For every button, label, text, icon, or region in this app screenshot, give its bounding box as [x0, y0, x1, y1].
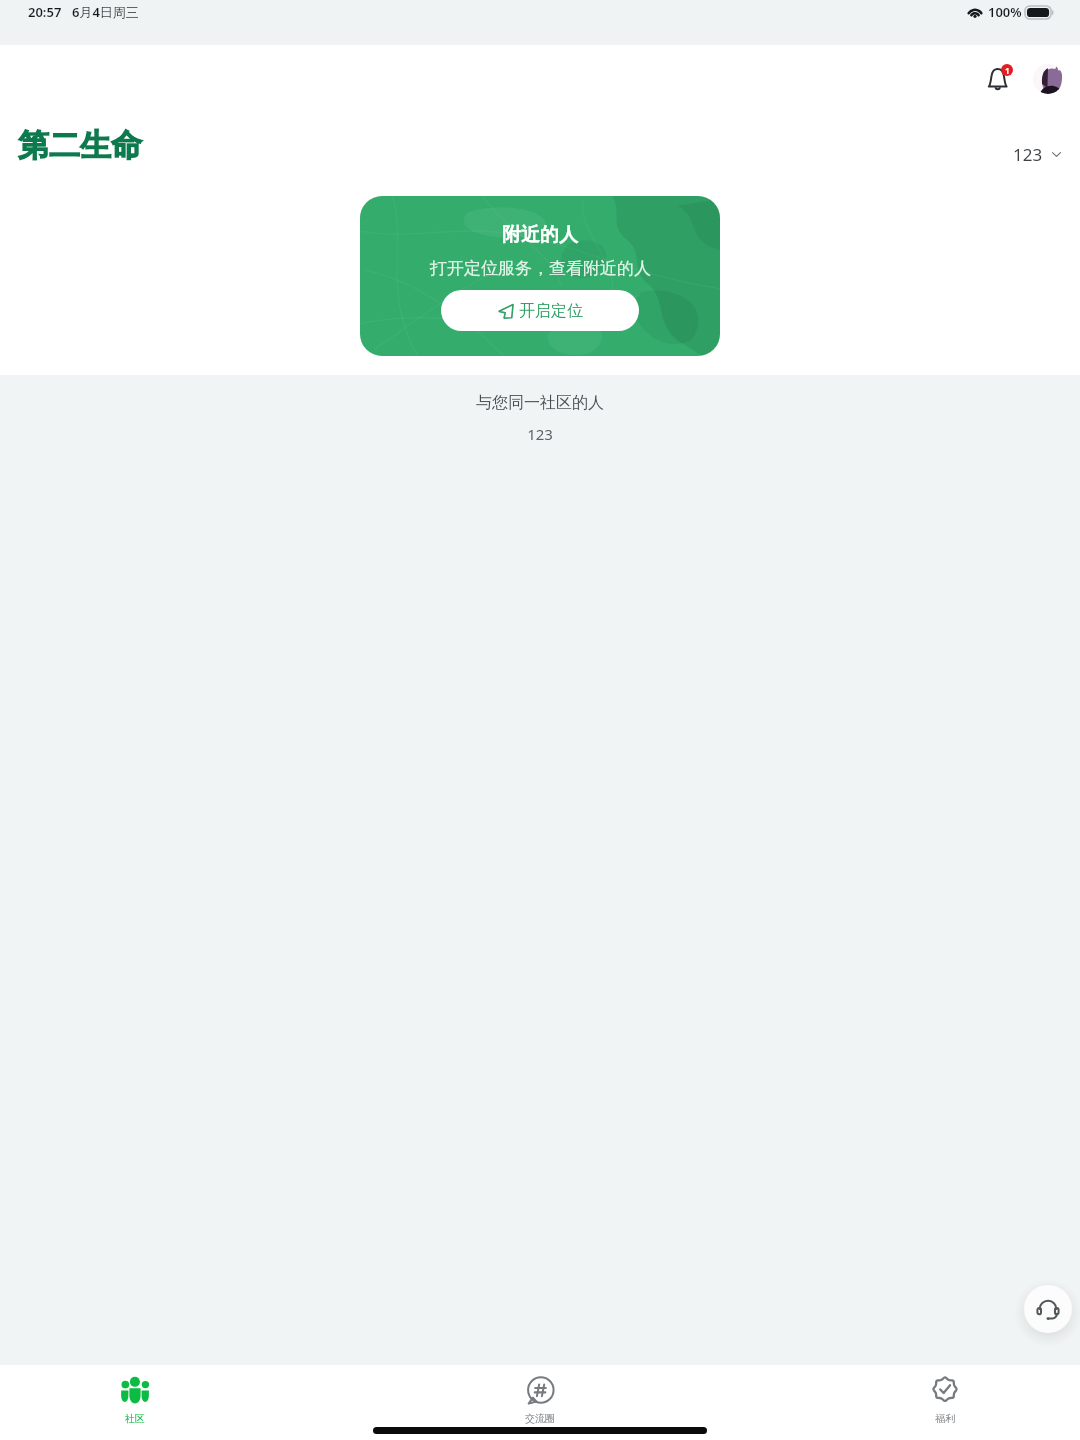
staticText: 6月4日周三: [72, 3, 139, 21]
staticText: 社区: [125, 1412, 145, 1425]
button[interactable]: 开启定位: [441, 290, 639, 331]
staticText: 交流圈: [525, 1412, 555, 1425]
staticText: 附近的人: [502, 223, 578, 247]
staticText: 与您同一社区的人: [0, 393, 1080, 413]
staticText: 打开定位服务，查看附近的人: [430, 258, 651, 279]
button[interactable]: 附近的人: [360, 196, 720, 356]
staticText: 1: [1005, 65, 1010, 76]
button[interactable]: 交流圈: [490, 1365, 590, 1427]
button[interactable]: 社区: [85, 1365, 185, 1427]
button[interactable]: 通知: [981, 60, 1019, 98]
staticText: 100%: [988, 3, 1022, 21]
staticText: 第二生命: [18, 126, 142, 165]
button[interactable]: 123: [1003, 134, 1071, 174]
button[interactable]: 福利: [895, 1365, 995, 1427]
staticText: 20:57: [28, 3, 62, 21]
staticText: 福利: [935, 1412, 955, 1425]
staticText: 123: [1013, 143, 1043, 166]
button[interactable]: 在线客服: [1024, 1285, 1072, 1333]
button[interactable]: 个人头像: [1033, 64, 1063, 94]
staticText: 123: [0, 424, 1080, 444]
staticText: 开启定位: [519, 301, 583, 321]
